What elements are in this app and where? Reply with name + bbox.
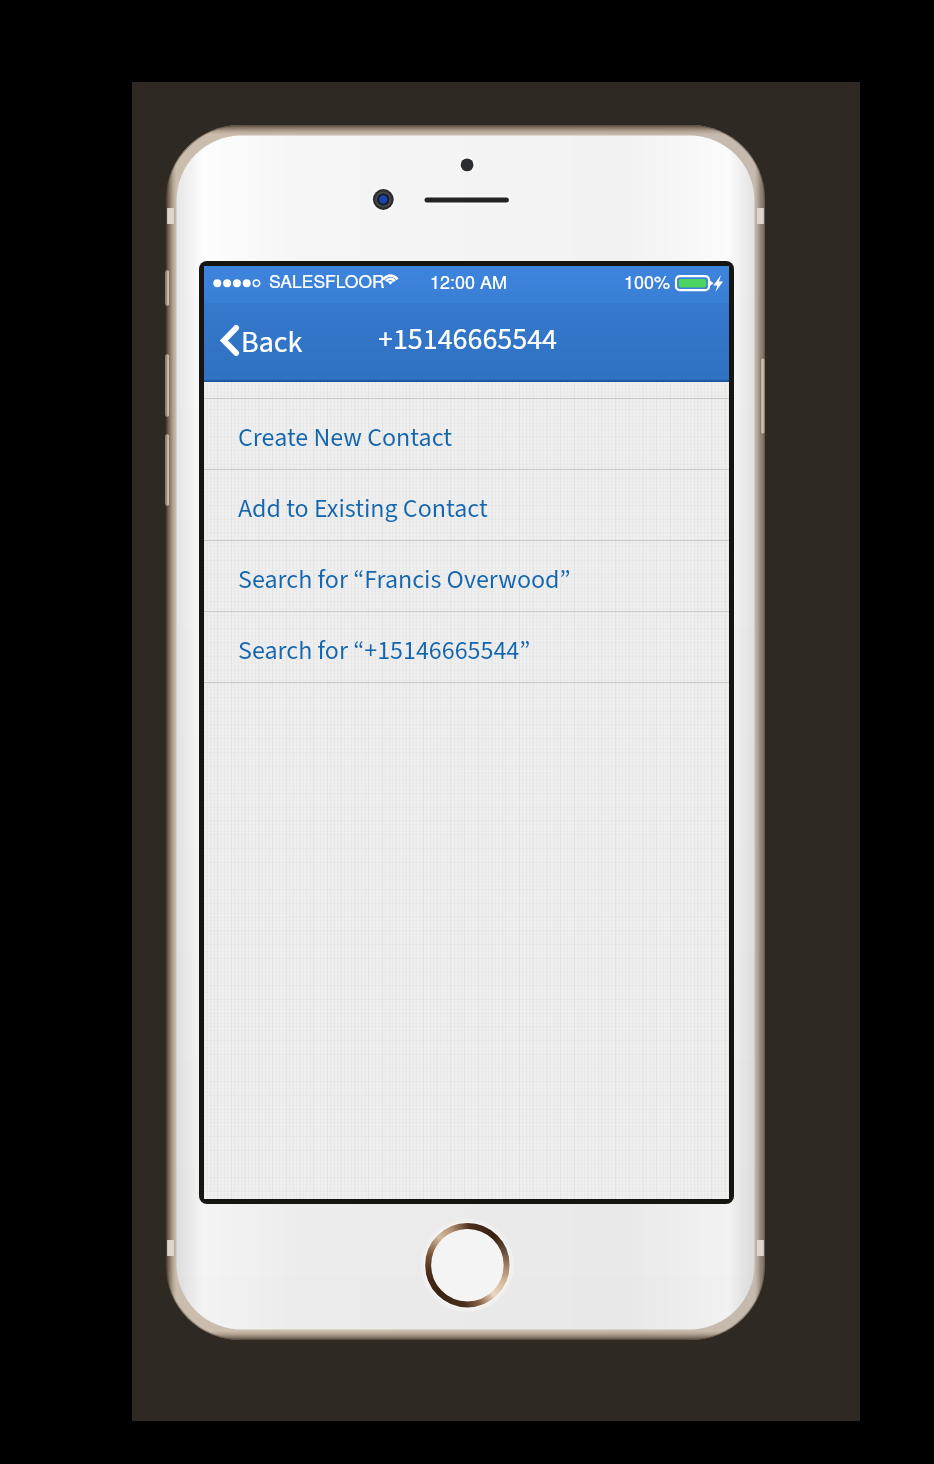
button[interactable]: Search for “Francis Overwood”	[204, 541, 729, 612]
staticText: +15146665544	[378, 318, 557, 361]
staticText: Back	[241, 321, 303, 364]
button[interactable]: Create New Contact	[204, 399, 729, 470]
staticText: Create New Contact	[238, 419, 453, 456]
staticText: 100%	[624, 268, 671, 294]
staticText: SALESFLOOR	[269, 268, 385, 293]
staticText: 12:00 AM	[430, 268, 508, 294]
staticText: Add to Existing Contact	[238, 490, 488, 527]
staticText: Search for “Francis Overwood”	[238, 561, 571, 598]
button[interactable]: Back	[221, 303, 325, 382]
button[interactable]: Add to Existing Contact	[204, 470, 729, 541]
button[interactable]: Search for “+15146665544”	[204, 612, 729, 683]
staticText: Search for “+15146665544”	[238, 632, 531, 669]
